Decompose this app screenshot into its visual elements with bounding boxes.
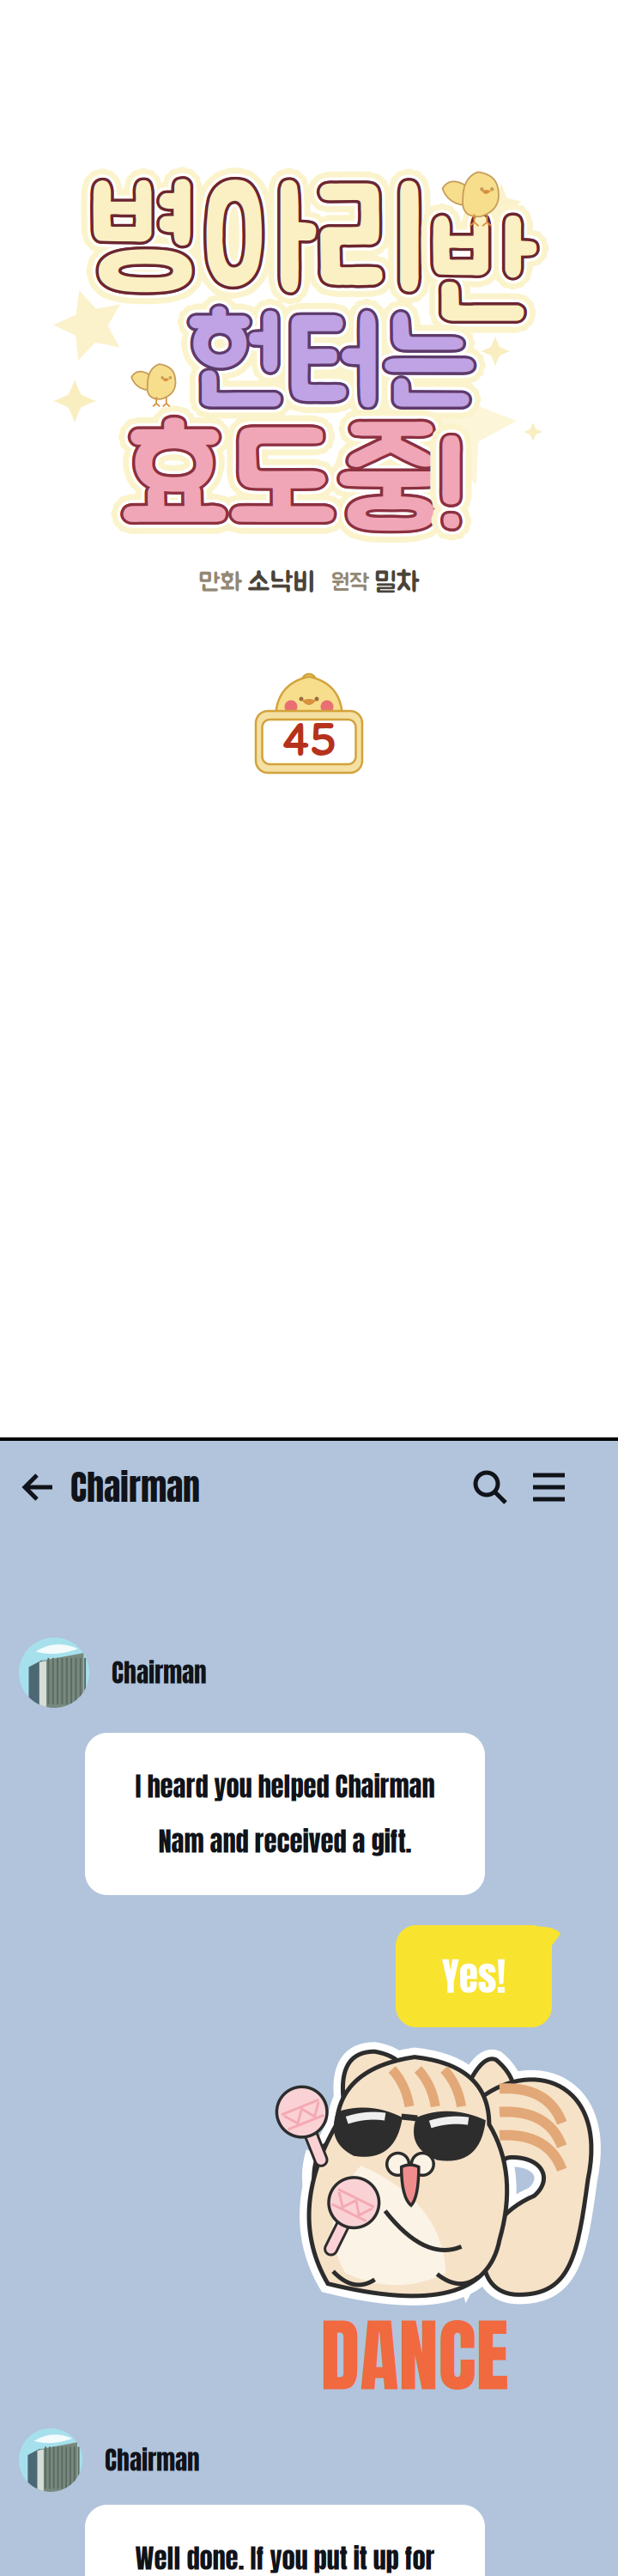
staticText: ! xyxy=(440,432,475,551)
staticText: 반 xyxy=(431,219,541,352)
staticText: 원작 xyxy=(331,572,369,595)
staticText: 병아리 xyxy=(81,174,420,314)
staticText: 병아리 xyxy=(87,171,426,310)
staticText: ! xyxy=(424,426,459,545)
staticText: 효도중 xyxy=(124,425,449,558)
staticText: 헌터는 xyxy=(184,309,473,429)
staticText: 병아리 xyxy=(89,179,428,318)
staticText: 병아리 xyxy=(87,176,426,315)
staticText: 효도중 xyxy=(128,415,454,548)
staticText: ! xyxy=(434,435,469,554)
staticText: ! xyxy=(431,437,466,556)
staticText: 병아리 xyxy=(75,176,414,315)
staticText: ! xyxy=(434,444,469,563)
staticText: 효도중 xyxy=(119,417,444,550)
staticText: 병아리 xyxy=(86,174,425,314)
staticText: ! xyxy=(436,433,472,552)
staticText: 반 xyxy=(427,199,536,332)
staticText: 병아리 xyxy=(84,170,423,309)
staticText: 병아리 xyxy=(86,177,425,317)
staticText: 헌터는 xyxy=(187,320,476,439)
staticText: 병아리 xyxy=(79,168,418,308)
staticText: 병아리 xyxy=(85,178,424,318)
staticText: 헌터는 xyxy=(197,302,486,421)
staticText: 병아리 xyxy=(94,182,433,321)
staticText: 반 xyxy=(425,208,535,341)
staticText: 병아리 xyxy=(82,178,421,318)
staticText: 병아리 xyxy=(84,182,423,321)
staticText: 병아리 xyxy=(78,165,417,305)
staticText: 효도중 xyxy=(127,409,452,542)
button[interactable]: Chairman xyxy=(0,1454,200,1520)
staticText: ! xyxy=(442,427,477,546)
staticText: 병아리 xyxy=(87,181,426,321)
staticText: 헌터는 xyxy=(185,310,474,430)
staticText: 반 xyxy=(424,216,533,349)
staticText: 반 xyxy=(433,200,542,333)
staticText: 헌터는 xyxy=(189,307,478,426)
staticText: 병아리 xyxy=(81,171,420,310)
staticText: ! xyxy=(431,432,466,551)
staticText: 병아리 xyxy=(84,179,423,318)
staticText: 반 xyxy=(430,216,539,349)
staticText: 헌터는 xyxy=(184,307,473,426)
staticText: 효도중 xyxy=(115,430,440,563)
staticText: ! xyxy=(429,424,465,543)
staticText: 효도중 xyxy=(113,415,438,548)
button[interactable]: Search xyxy=(468,1465,512,1510)
staticText: 반 xyxy=(432,208,542,341)
staticText: 반 xyxy=(419,215,529,348)
staticText: 병아리 xyxy=(81,181,420,321)
staticText: 헌터는 xyxy=(187,311,476,430)
staticText: 병아리 xyxy=(90,176,429,315)
staticText: Chairman xyxy=(105,2441,200,2479)
staticText: 병아리 xyxy=(76,171,415,311)
staticText: ! xyxy=(446,432,481,551)
staticText: 효도중 xyxy=(127,430,452,563)
staticText: 효도중 xyxy=(125,412,450,545)
staticText: ! xyxy=(435,429,471,548)
staticText: Chairman xyxy=(112,1654,207,1692)
staticText: ! xyxy=(434,423,469,542)
staticText: 헌터는 xyxy=(176,314,466,433)
staticText: ! xyxy=(434,441,469,560)
staticText: 헌터는 xyxy=(192,311,481,430)
staticText: 헌터는 xyxy=(196,308,485,427)
staticText: 효도중 xyxy=(127,420,452,552)
staticText: 반 xyxy=(427,208,536,341)
staticText: 효도중 xyxy=(118,421,443,554)
staticText: ! xyxy=(429,439,465,559)
staticText: 45 xyxy=(282,719,336,765)
staticText: 반 xyxy=(416,217,526,350)
staticText: 효도중 xyxy=(133,420,458,552)
staticText: 반 xyxy=(428,208,538,341)
button[interactable]: Menu xyxy=(528,1468,570,1507)
staticText: ! xyxy=(439,429,474,548)
staticText: 반 xyxy=(437,205,547,338)
staticText: 효도중 xyxy=(116,427,441,560)
staticText: 병아리 xyxy=(89,173,428,312)
staticText: 헌터는 xyxy=(189,309,478,429)
staticText: 헌터는 xyxy=(187,299,476,418)
staticText: 헌터는 xyxy=(188,305,477,425)
staticText: 효도중 xyxy=(121,432,446,564)
staticText: ! xyxy=(431,426,466,546)
staticText: 효도중 xyxy=(112,420,437,552)
staticText: ! xyxy=(434,420,469,539)
staticText: ! xyxy=(424,438,459,557)
staticText: 반 xyxy=(430,206,539,339)
staticText: 효도중 xyxy=(126,417,451,549)
staticText: 병아리 xyxy=(94,170,433,309)
staticText: 효도중 xyxy=(126,423,451,555)
staticText: 반 xyxy=(424,210,534,342)
staticText: 헌터는 xyxy=(182,300,471,419)
staticText: 효도중 xyxy=(121,420,446,552)
staticText: 반 xyxy=(430,211,539,344)
staticText: 병아리 xyxy=(76,180,415,320)
staticText: 효도중 xyxy=(130,420,455,552)
staticText: 헌터는 xyxy=(184,308,473,427)
staticText: 효도중 xyxy=(123,418,448,551)
staticText: 효도중 xyxy=(109,420,434,552)
staticText: 효도중 xyxy=(115,423,441,555)
staticText: 효도중 xyxy=(113,424,438,557)
